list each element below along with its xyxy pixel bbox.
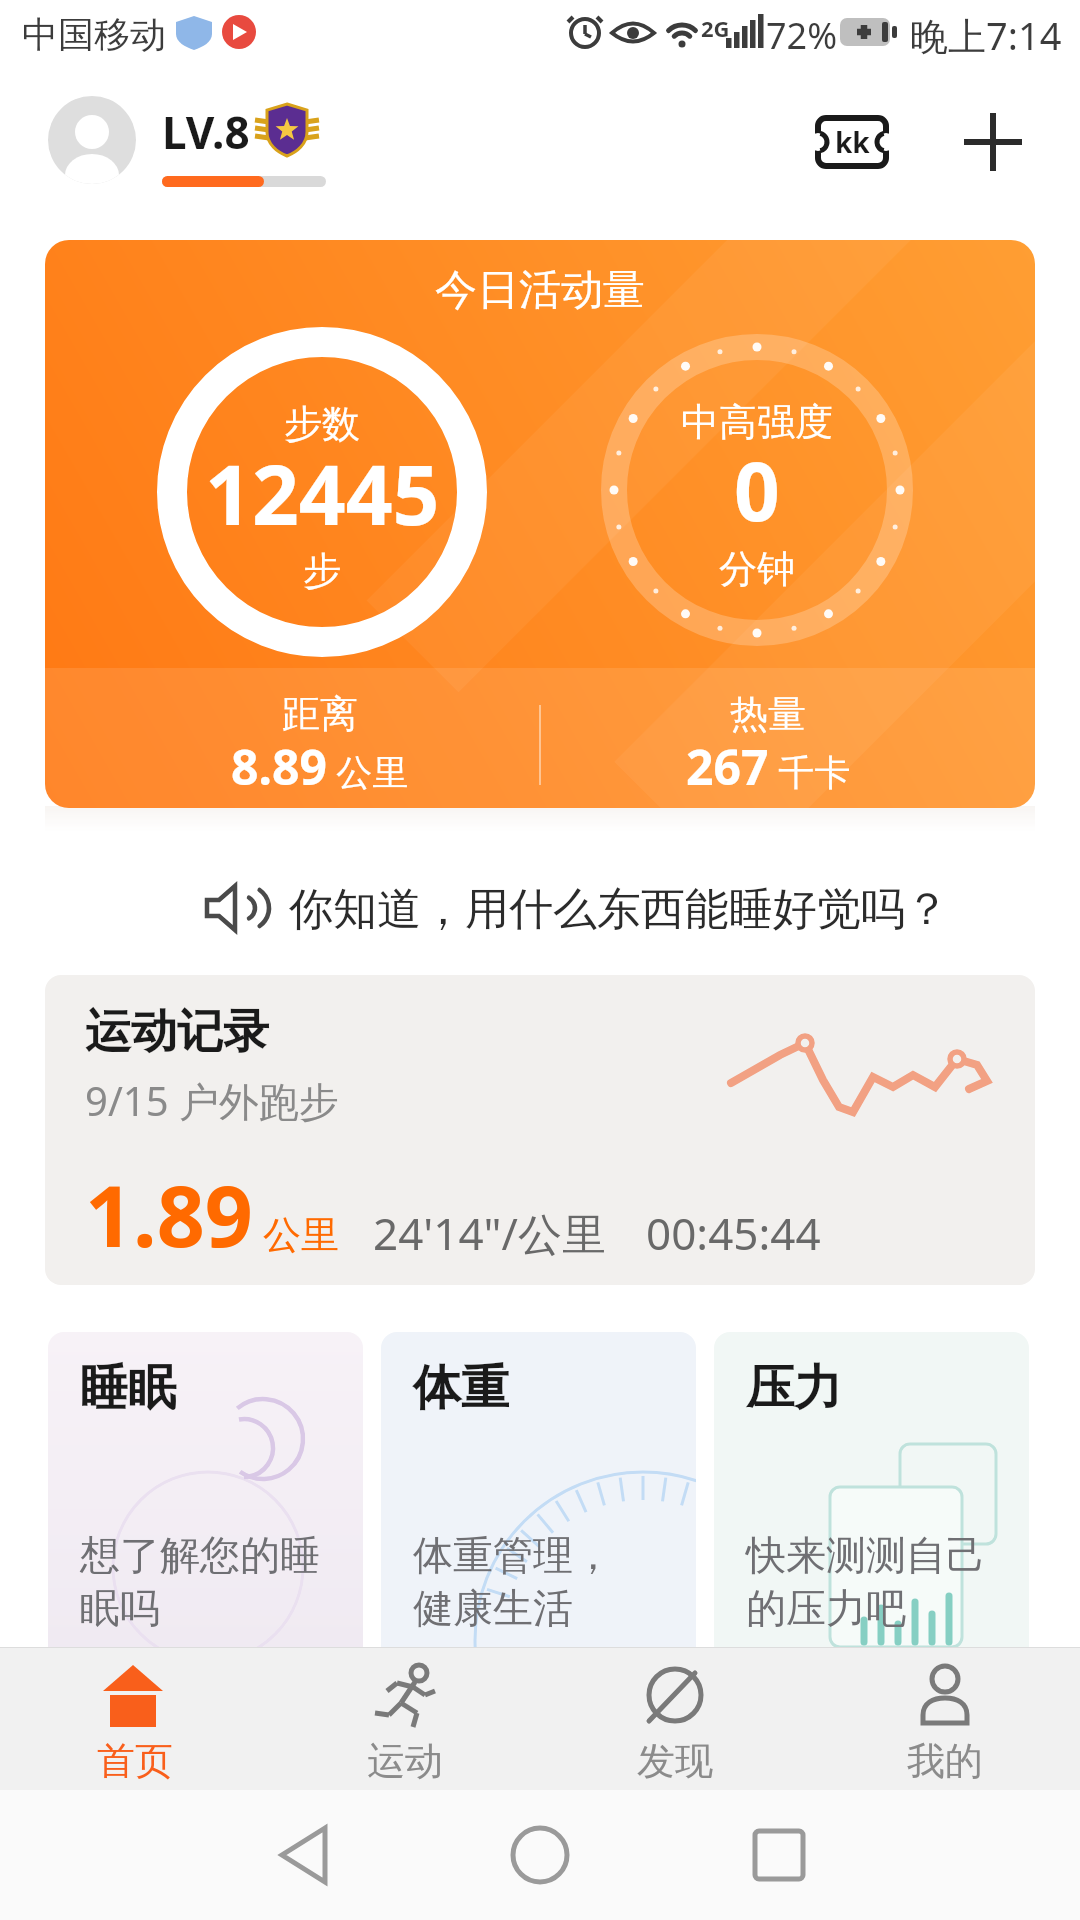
staticText: 发现 [637,1737,713,1785]
staticText: 1.89 [85,1157,253,1271]
staticText: 步 [303,547,341,595]
staticText: kk [835,123,870,161]
staticText: 快来测测自己 的压力吧 [746,1530,987,1634]
staticText: 睡眠 [80,1358,176,1418]
staticText: 运动 [367,1737,443,1785]
staticText: 首页 [97,1737,173,1785]
button[interactable]: 首页 [35,1655,235,1785]
staticText: 9/15 户外跑步 [85,1073,339,1128]
staticText: 中国移动 [22,12,166,57]
staticText: 公里 [327,747,409,796]
button[interactable]: 体重 [381,1332,696,1647]
staticText: 00:45:44 [646,1203,821,1263]
staticText: 公里 [253,1207,339,1259]
staticText: 267 [686,734,769,799]
button[interactable] [958,109,1028,175]
staticText: 0 [734,435,780,544]
button[interactable] [727,1803,831,1907]
staticText: 我的 [907,1737,983,1785]
button[interactable]: 我的 [845,1655,1045,1785]
button[interactable] [250,1803,354,1907]
staticText: 想了解您的睡 眠吗 [80,1530,321,1634]
staticText: 体重管理， 健康生活 [413,1530,613,1634]
staticText: 72% [766,11,838,60]
staticText: 距离 [282,690,358,738]
staticText: 晚上7:14 [910,9,1062,61]
staticText: 你知道，用什么东西能睡好觉吗？ [289,882,949,937]
staticText: 千卡 [769,747,851,796]
staticText: 热量 [730,690,806,738]
staticText: 8.89 [231,734,327,799]
button[interactable] [488,1803,592,1907]
staticText: 步数 [284,400,360,448]
button[interactable]: 压力 [714,1332,1029,1647]
staticText: 体重 [413,1358,509,1418]
button[interactable]: 运动 [305,1655,505,1785]
staticText: 压力 [746,1358,842,1418]
button[interactable]: 发现 [575,1655,775,1785]
button[interactable]: 运动记录 [45,975,1035,1285]
staticText: 2G [701,13,730,43]
staticText: 分钟 [719,545,795,593]
staticText: 12445 [205,437,440,549]
staticText: 今日活动量 [435,264,645,317]
staticText: 运动记录 [85,1003,269,1061]
button[interactable]: kk [814,114,890,170]
button[interactable]: 今日活动量 [45,240,1035,808]
button[interactable]: 睡眠 [48,1332,363,1647]
button[interactable]: LV.8 [162,102,250,162]
button[interactable]: 你知道，用什么东西能睡好觉吗？ [205,880,949,938]
button[interactable] [48,96,136,184]
staticText: 24'14"/公里 [373,1203,606,1263]
staticText: 中高强度 [681,398,833,446]
